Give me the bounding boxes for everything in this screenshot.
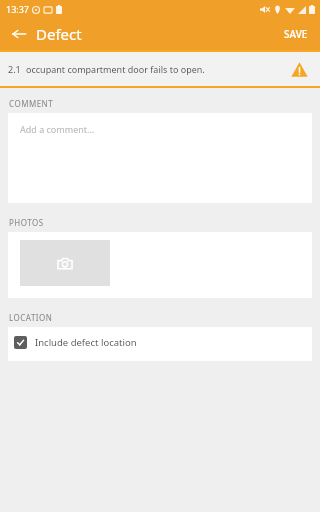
staticText: LOCATION: [9, 312, 53, 323]
staticText: 2.1: [8, 63, 21, 75]
staticText: Include defect location: [35, 336, 137, 349]
button[interactable]: 2.1: [0, 52, 320, 86]
button[interactable]: Back: [4, 19, 34, 49]
button[interactable]: Add a comment...: [8, 113, 312, 203]
staticText: occupant compartment door fails to open.: [26, 63, 205, 75]
staticText: PHOTOS: [9, 217, 44, 228]
staticText: 13:37: [6, 3, 30, 15]
staticText: SAVE: [284, 27, 308, 41]
button[interactable]: Include defect location: [14, 327, 312, 358]
button[interactable]: SAVE: [274, 21, 318, 47]
button[interactable]: Warning: [288, 58, 310, 80]
staticText: COMMENT: [9, 98, 54, 109]
staticText: Defect: [36, 24, 82, 44]
staticText: Add a comment...: [20, 123, 95, 135]
button[interactable]: Add photo: [20, 240, 110, 286]
